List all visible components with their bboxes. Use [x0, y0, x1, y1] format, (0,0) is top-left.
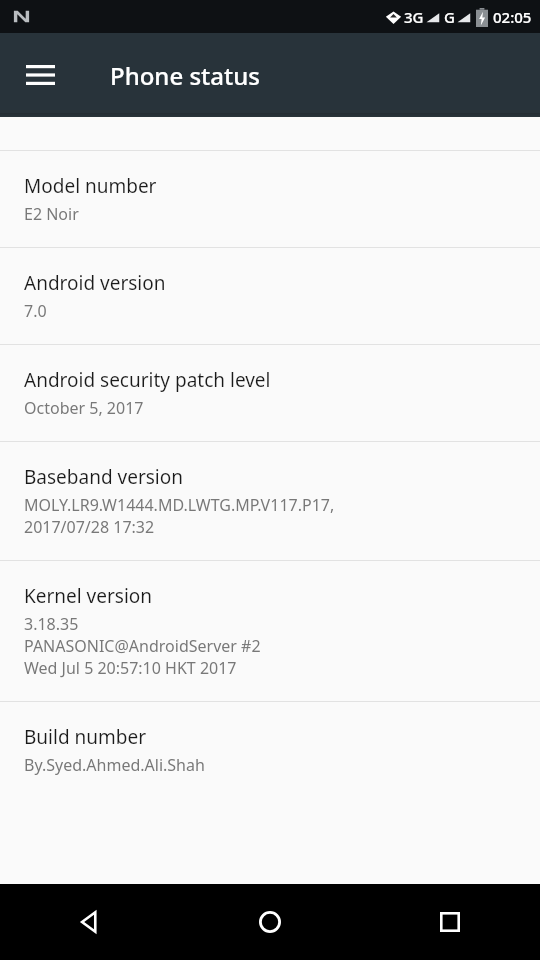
- staticText: October 5, 2017: [24, 397, 144, 419]
- staticText: MOLY.LR9.W1444.MD.LWTG.MP.V117.P17,: [24, 494, 335, 516]
- button[interactable]: Android version: [0, 248, 540, 344]
- button[interactable]: Back: [0, 884, 180, 960]
- staticText: 2017/07/28 17:32: [24, 516, 155, 538]
- staticText: Phone status: [110, 59, 260, 92]
- staticText: Wed Jul 5 20:57:10 HKT 2017: [24, 657, 237, 679]
- staticText: G: [444, 7, 455, 27]
- button[interactable]: Recent apps: [360, 884, 540, 960]
- staticText: Android security patch level: [24, 367, 271, 393]
- staticText: Android version: [24, 270, 166, 296]
- staticText: 7.0: [24, 300, 47, 322]
- staticText: E2 Noir: [24, 203, 79, 225]
- button[interactable]: Build number: [0, 702, 540, 798]
- staticText: Kernel version: [24, 583, 153, 609]
- button[interactable]: Open navigation menu: [16, 51, 64, 99]
- staticText: Model number: [24, 173, 157, 199]
- button[interactable]: Android security patch level: [0, 345, 540, 441]
- button[interactable]: Kernel version: [0, 561, 540, 701]
- staticText: 3G: [404, 7, 424, 27]
- button[interactable]: Home: [180, 884, 360, 960]
- staticText: PANASONIC@AndroidServer #2: [24, 635, 261, 657]
- button[interactable]: Baseband version: [0, 442, 540, 560]
- staticText: By.Syed.Ahmed.Ali.Shah: [24, 754, 205, 776]
- staticText: Baseband version: [24, 464, 183, 490]
- staticText: 3.18.35: [24, 613, 79, 635]
- button[interactable]: Model number: [0, 151, 540, 247]
- staticText: Build number: [24, 724, 147, 750]
- staticText: 02:05: [493, 7, 532, 27]
